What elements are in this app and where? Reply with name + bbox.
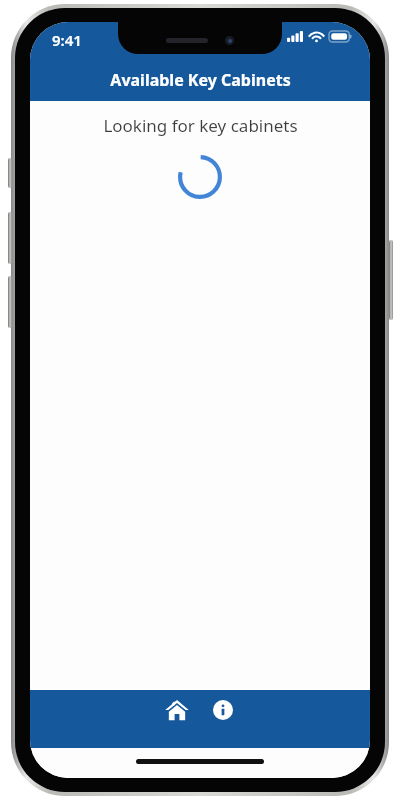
- button[interactable]: Information: [203, 690, 243, 730]
- staticText: Looking for key cabinets: [103, 114, 298, 137]
- button[interactable]: Home: [157, 690, 197, 730]
- staticText: Available Key Cabinets: [110, 69, 291, 91]
- staticText: 9:41: [52, 30, 82, 50]
